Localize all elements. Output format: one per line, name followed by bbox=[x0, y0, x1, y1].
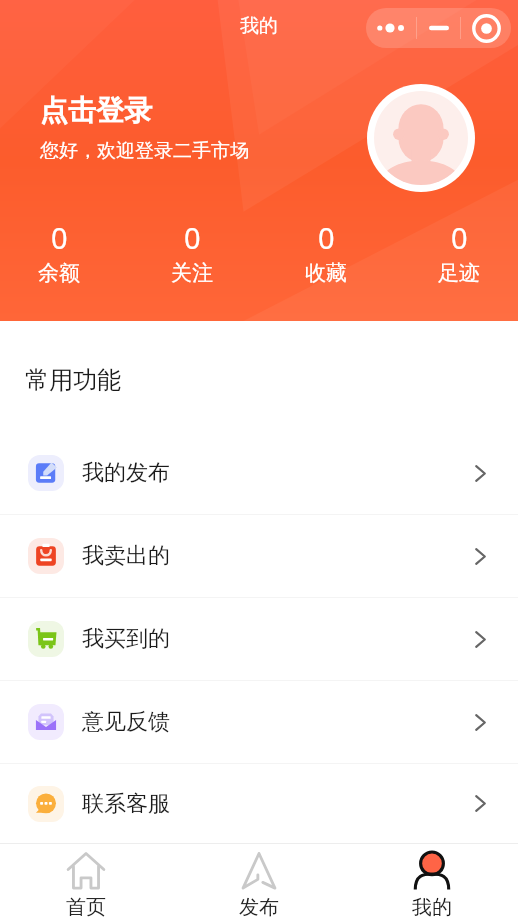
button[interactable]: 发布 bbox=[172, 844, 345, 920]
button[interactable]: Minimize bbox=[417, 8, 460, 48]
staticText: 0 bbox=[51, 218, 68, 257]
staticText: 我的 bbox=[412, 895, 452, 920]
button[interactable]: More options bbox=[366, 8, 416, 48]
staticText: 足迹 bbox=[438, 260, 480, 286]
staticText: 点击登录 bbox=[40, 93, 152, 128]
staticText: 意见反馈 bbox=[82, 708, 170, 736]
button[interactable]: 我卖出的 bbox=[0, 515, 518, 597]
button[interactable]: Close bbox=[461, 8, 511, 48]
staticText: 0 bbox=[318, 218, 335, 257]
staticText: 关注 bbox=[171, 260, 213, 286]
staticText: 发布 bbox=[239, 895, 279, 920]
button[interactable]: 我的发布 bbox=[0, 432, 518, 514]
button[interactable]: 0 bbox=[296, 218, 356, 286]
staticText: 余额 bbox=[38, 260, 80, 286]
staticText: 联系客服 bbox=[82, 790, 170, 818]
staticText: 我的 bbox=[240, 14, 278, 38]
button[interactable]: 我买到的 bbox=[0, 598, 518, 680]
staticText: 常用功能 bbox=[25, 365, 121, 395]
button[interactable]: 0 bbox=[162, 218, 222, 286]
staticText: 我卖出的 bbox=[82, 542, 170, 570]
staticText: 您好，欢迎登录二手市场 bbox=[40, 139, 249, 163]
staticText: 我的发布 bbox=[82, 459, 170, 487]
staticText: 首页 bbox=[66, 895, 106, 920]
button[interactable]: 首页 bbox=[0, 844, 172, 920]
button[interactable]: 0 bbox=[29, 218, 89, 286]
button[interactable]: 我的 bbox=[345, 844, 518, 920]
staticText: 0 bbox=[451, 218, 468, 257]
staticText: 0 bbox=[184, 218, 201, 257]
button[interactable]: 联系客服 bbox=[0, 764, 518, 843]
staticText: 我买到的 bbox=[82, 625, 170, 653]
button[interactable]: 0 bbox=[429, 218, 489, 286]
button[interactable]: 意见反馈 bbox=[0, 681, 518, 763]
staticText: 收藏 bbox=[305, 260, 347, 286]
